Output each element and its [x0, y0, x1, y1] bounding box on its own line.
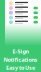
staticText: Notifications [3, 56, 37, 63]
staticText: E-Sign [12, 48, 28, 55]
staticText: Easy to Use [6, 64, 35, 71]
